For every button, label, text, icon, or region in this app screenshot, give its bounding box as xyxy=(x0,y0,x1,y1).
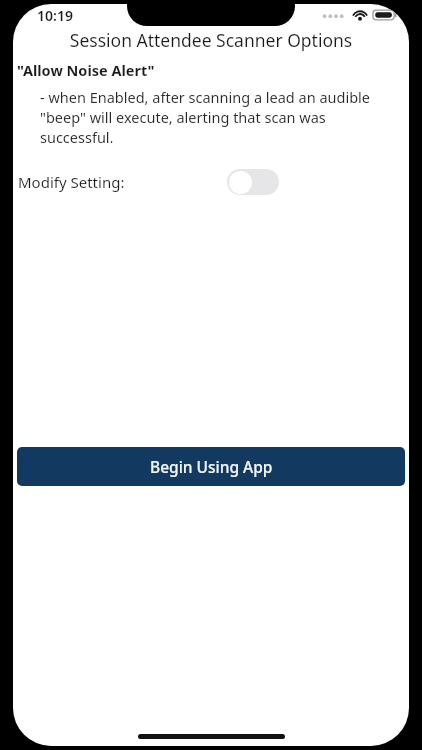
staticText: - when Enabled, after scanning a lead an… xyxy=(40,87,399,147)
staticText: Begin Using App xyxy=(150,456,273,477)
staticText: "Allow Noise Alert" xyxy=(17,60,155,80)
button[interactable]: Begin Using App xyxy=(17,447,405,486)
staticText: Modify Setting: xyxy=(18,172,125,192)
button[interactable]: Allow Noise Alert toggle, off xyxy=(227,169,279,195)
staticText: Session Attendee Scanner Options xyxy=(13,28,409,52)
staticText: 10:19 xyxy=(37,6,73,25)
